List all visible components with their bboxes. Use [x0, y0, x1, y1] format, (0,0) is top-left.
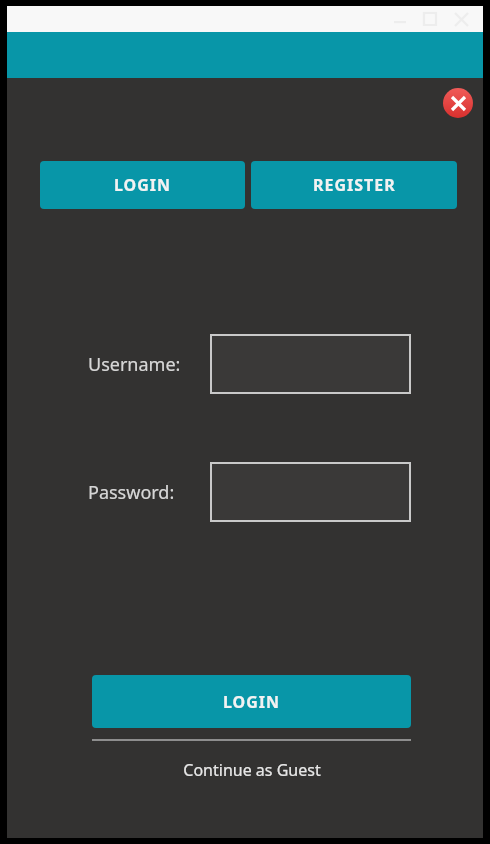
- button[interactable]: Username:: [210, 334, 411, 394]
- staticText: REGISTER: [313, 174, 396, 196]
- button[interactable]: Close: [443, 88, 473, 118]
- staticText: LOGIN: [114, 174, 172, 196]
- button[interactable]: LOGIN: [92, 675, 411, 728]
- button[interactable]: LOGIN: [40, 161, 245, 209]
- staticText: LOGIN: [223, 691, 281, 713]
- staticText: Username:: [88, 352, 181, 377]
- button[interactable]: REGISTER: [251, 161, 457, 209]
- staticText: Password:: [88, 480, 175, 505]
- staticText: Continue as Guest: [183, 759, 321, 781]
- button[interactable]: Maximize: [415, 7, 445, 31]
- button[interactable]: Password:: [210, 462, 411, 522]
- button[interactable]: Close window: [445, 7, 477, 31]
- button[interactable]: Continue as Guest: [92, 753, 411, 787]
